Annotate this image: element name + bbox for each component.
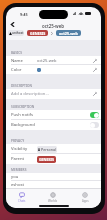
staticText: Parent — [11, 156, 24, 162]
staticText: Chats — [18, 199, 26, 203]
button[interactable]: Visibility — [6, 144, 101, 154]
staticText: Color — [11, 67, 22, 73]
staticText: BASICS — [11, 51, 22, 55]
button[interactable]: eshost — [6, 181, 101, 188]
staticText: oct25-web — [59, 31, 78, 36]
button[interactable]: Color — [6, 65, 101, 74]
button[interactable]: Toggle off — [90, 122, 99, 128]
button[interactable]: Parent — [6, 154, 101, 164]
staticText: unihost — [12, 31, 24, 35]
button[interactable]: GENESIS — [37, 156, 56, 163]
staticText: MEMBERS — [11, 168, 27, 172]
button[interactable]: Chats — [6, 189, 37, 205]
button[interactable]: Edit — [91, 66, 99, 74]
button[interactable]: Edit — [91, 90, 99, 98]
staticText: GENESIS — [30, 31, 46, 36]
staticText: 9:45 — [20, 12, 28, 17]
button[interactable]: Apps — [69, 189, 101, 205]
button[interactable]: Background — [6, 120, 101, 130]
button[interactable]: Back — [8, 20, 17, 29]
button[interactable]: Personal — [37, 146, 57, 153]
staticText: Background — [11, 122, 35, 128]
button[interactable]: oct25-web — [56, 30, 81, 36]
staticText: SUBSCRIPTION — [11, 105, 35, 109]
button[interactable]: Add a description... — [6, 89, 101, 99]
staticText: eshost — [11, 182, 25, 188]
staticText: oct25-web — [37, 58, 57, 63]
staticText: Apps — [82, 199, 89, 203]
button[interactable]: GENESIS — [27, 30, 48, 36]
staticText: Personal — [41, 147, 56, 152]
staticText: you — [11, 174, 19, 180]
staticText: oct25-web — [42, 23, 65, 29]
staticText: Push notifs — [11, 112, 33, 118]
staticText: Add a description... — [11, 91, 49, 97]
staticText: GENESIS — [39, 157, 54, 162]
staticText: Worlds — [48, 199, 58, 203]
button[interactable]: Edit — [91, 57, 99, 65]
staticText: Name — [11, 58, 23, 64]
staticText: DESCRIPTION — [11, 84, 33, 88]
staticText: Visibility — [11, 146, 28, 152]
button[interactable]: you — [6, 173, 101, 181]
button[interactable]: Toggle on — [90, 112, 99, 118]
button[interactable]: Name — [6, 56, 101, 65]
staticText: PRIVACY — [11, 139, 25, 143]
button[interactable]: unihost — [8, 30, 24, 36]
button[interactable]: Push notifs — [6, 110, 101, 120]
button[interactable]: Worlds — [37, 189, 69, 205]
